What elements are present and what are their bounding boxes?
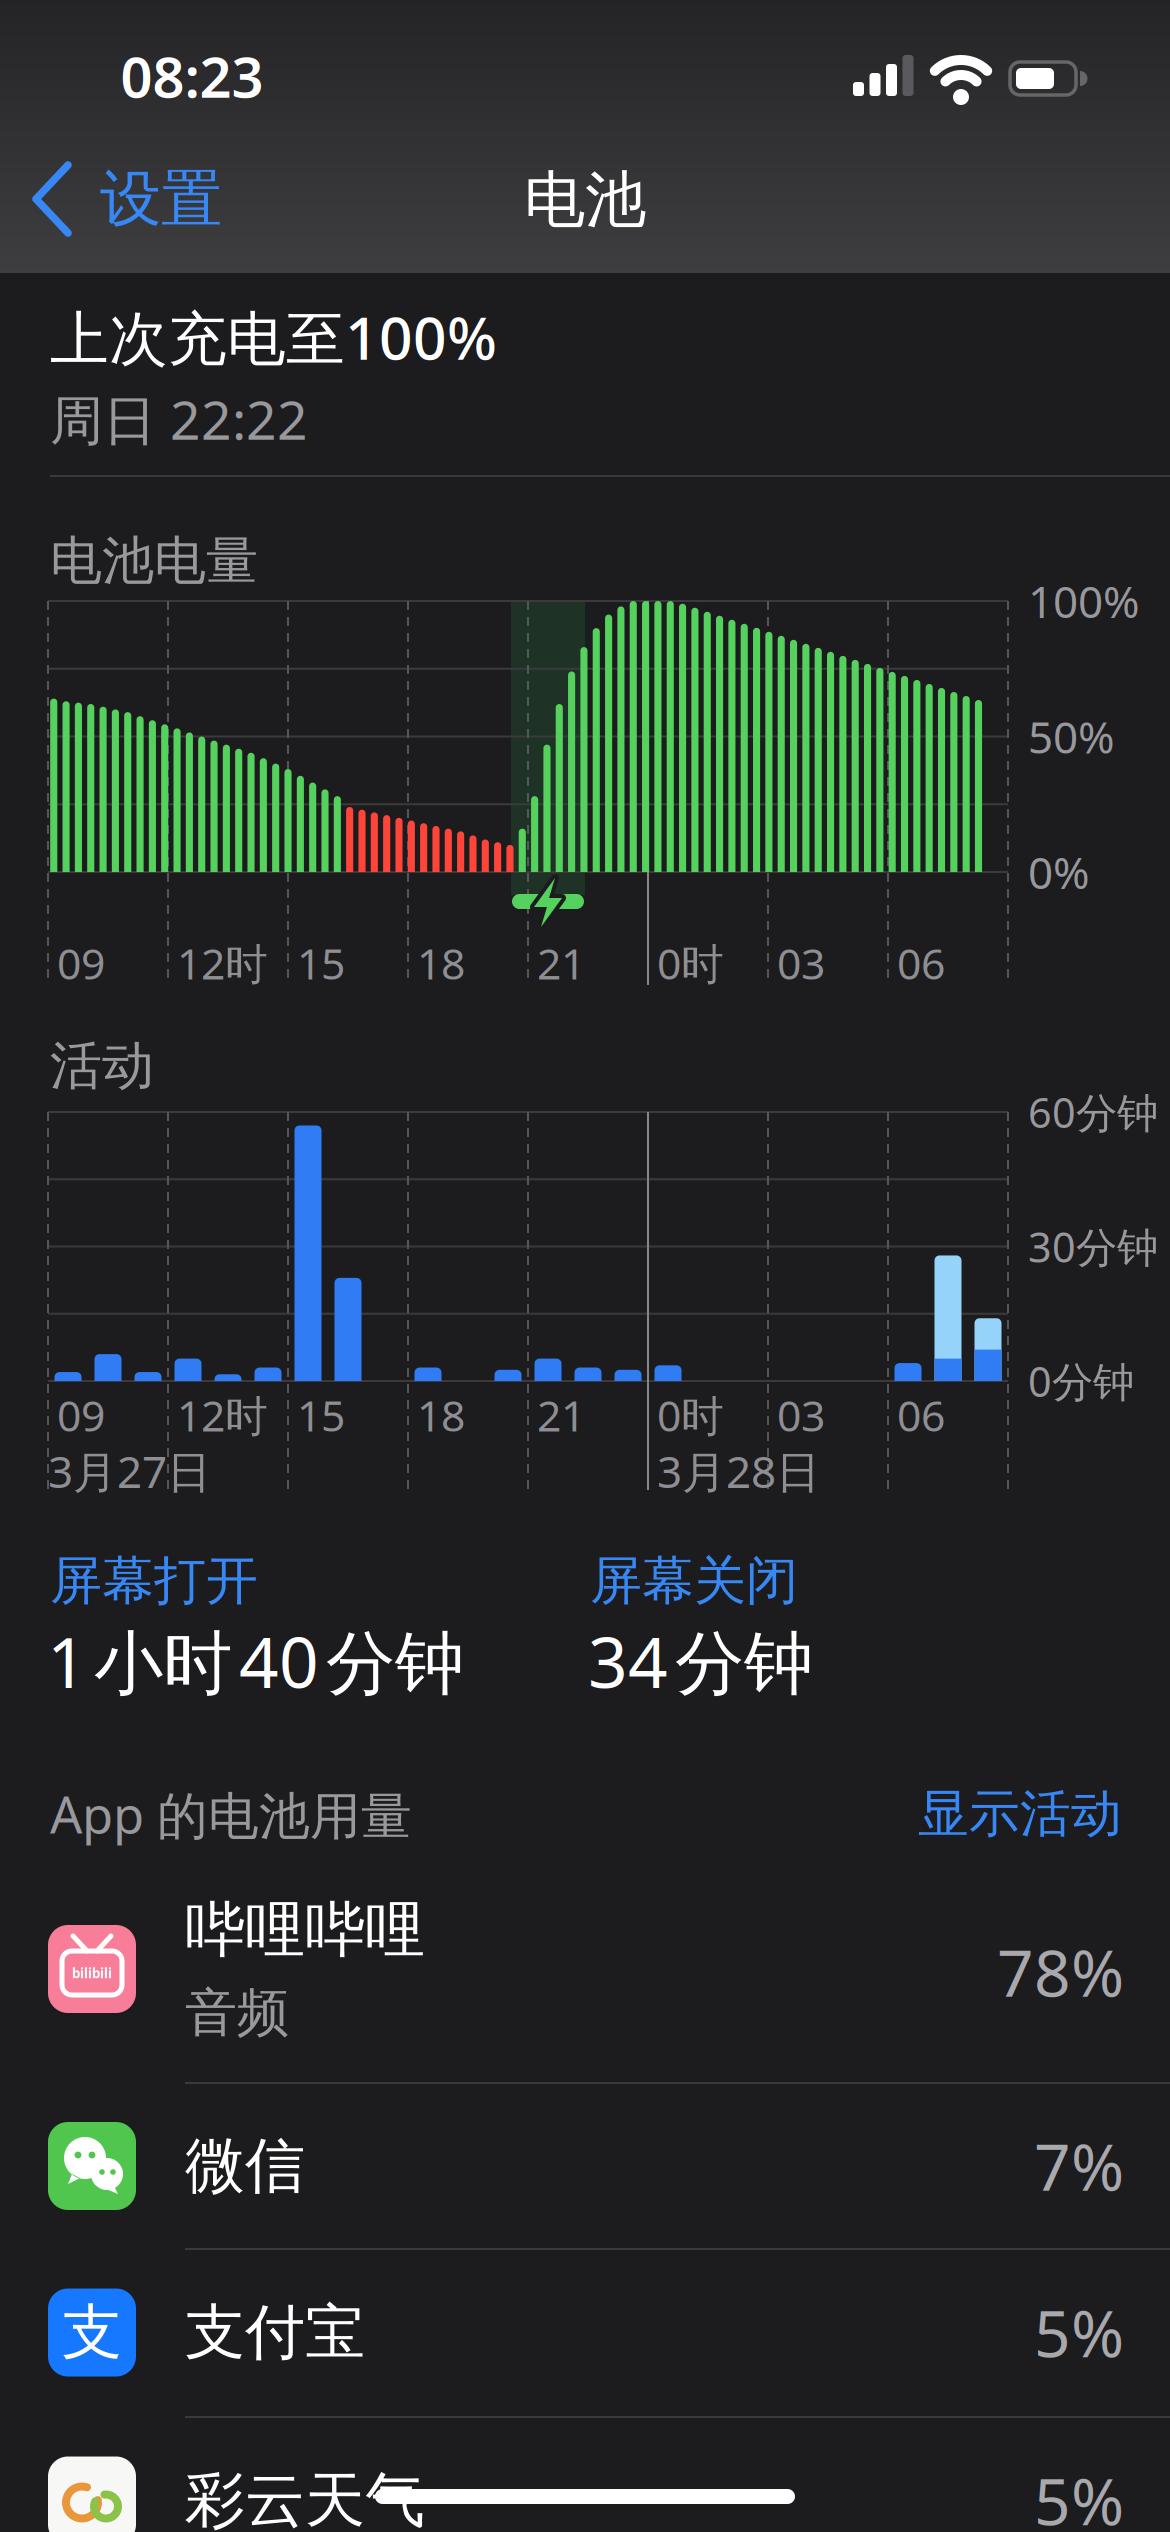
staticText: 21 — [537, 935, 585, 991]
staticText: 03 — [777, 1387, 825, 1443]
staticText: 微信 — [185, 2129, 305, 2203]
staticText: 周日 22:22 — [50, 384, 308, 454]
staticText: App 的电池用量 — [50, 1780, 412, 1848]
staticText: 显示活动 — [918, 1783, 1122, 1845]
staticText: 支付宝 — [185, 2296, 365, 2369]
staticText: 78% — [997, 1929, 1124, 2014]
staticText: 屏幕打开 — [50, 1549, 258, 1613]
staticText: 60分钟 — [1028, 1085, 1158, 1139]
staticText: 18 — [417, 1387, 465, 1443]
staticText: 15 — [297, 935, 345, 991]
staticText: 上次充电至100% — [50, 298, 497, 376]
staticText: 08:23 — [120, 39, 263, 113]
staticText: 0% — [1028, 843, 1090, 901]
staticText: 09 — [57, 935, 105, 991]
staticText: 09 — [57, 1387, 105, 1443]
staticText: 50% — [1028, 707, 1115, 766]
staticText: 03 — [777, 935, 825, 991]
staticText: 12时 — [177, 935, 268, 991]
button[interactable]: 支 — [0, 2249, 1170, 2416]
staticText: 彩云天气 — [185, 2464, 425, 2532]
staticText: bilibili — [72, 1964, 112, 1982]
button[interactable]: 微信 — [0, 2083, 1170, 2249]
staticText: 0时 — [657, 1387, 724, 1443]
staticText: 电池 — [524, 162, 646, 238]
staticText: 7% — [1034, 2123, 1124, 2208]
staticText: 音频 — [185, 1981, 289, 2045]
staticText: 5% — [1034, 2290, 1124, 2375]
staticText: 5% — [1034, 2458, 1124, 2532]
button[interactable]: bilibili — [0, 1855, 1170, 2083]
staticText: 3月27日 — [48, 1442, 211, 1500]
staticText: 3月28日 — [657, 1442, 820, 1500]
staticText: 屏幕关闭 — [590, 1549, 798, 1613]
staticText: 支 — [62, 2296, 122, 2369]
staticText: 0时 — [657, 935, 724, 991]
staticText: 100% — [1028, 572, 1140, 630]
staticText: 设置 — [100, 161, 222, 237]
staticText: 电池电量 — [50, 529, 258, 593]
staticText: 活动 — [50, 1034, 154, 1098]
staticText: 1 小时 40 分钟 — [47, 1615, 464, 1707]
staticText: 34 分钟 — [588, 1615, 813, 1707]
staticText: 06 — [897, 935, 945, 991]
button[interactable]: 显示活动 — [822, 1783, 1122, 1845]
staticText: 21 — [537, 1387, 585, 1443]
staticText: 12时 — [177, 1387, 268, 1443]
staticText: 0分钟 — [1028, 1354, 1134, 1408]
staticText: 06 — [897, 1387, 945, 1443]
button[interactable]: 返回设置 — [14, 146, 314, 252]
staticText: 15 — [297, 1387, 345, 1443]
staticText: 哔哩哔哩 — [185, 1893, 425, 1967]
button[interactable]: 彩云天气 — [0, 2417, 1170, 2532]
staticText: 18 — [417, 935, 465, 991]
staticText: 30分钟 — [1028, 1219, 1158, 1274]
